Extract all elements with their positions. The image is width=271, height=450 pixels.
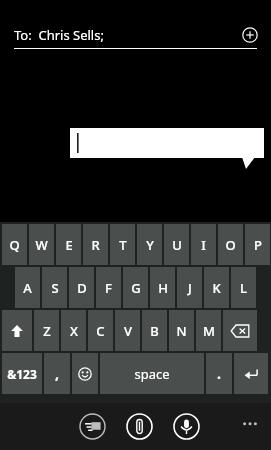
button[interactable]: T xyxy=(110,224,135,265)
button[interactable] xyxy=(223,310,257,351)
staticText: L xyxy=(240,279,247,297)
button[interactable]: D xyxy=(69,267,94,308)
button[interactable]: F xyxy=(96,267,121,308)
staticText: F xyxy=(105,279,112,297)
button[interactable]: Add recipient xyxy=(239,24,261,46)
staticText: Z xyxy=(43,322,51,340)
button[interactable]: Send xyxy=(76,410,109,443)
button[interactable]: , xyxy=(44,353,70,394)
staticText: P xyxy=(254,236,262,254)
staticText: B xyxy=(150,322,159,340)
button[interactable]: Y xyxy=(137,224,162,265)
button[interactable]: X xyxy=(61,310,86,351)
button[interactable]: Attach xyxy=(123,410,156,443)
button[interactable]: K xyxy=(204,267,229,308)
staticText: R xyxy=(91,236,100,254)
button[interactable]: Z xyxy=(34,310,59,351)
button[interactable]: C xyxy=(88,310,113,351)
staticText: To: Chris Sells; xyxy=(14,26,104,44)
button[interactable]: U xyxy=(164,224,189,265)
button[interactable]: M xyxy=(196,310,221,351)
button[interactable] xyxy=(72,353,98,394)
staticText: K xyxy=(212,279,221,297)
staticText: O xyxy=(225,236,236,254)
button[interactable]: P xyxy=(245,224,270,265)
button[interactable]: More options xyxy=(235,412,265,442)
staticText: C xyxy=(96,322,105,340)
button[interactable]: Voice input xyxy=(170,410,203,443)
button[interactable]: R xyxy=(83,224,108,265)
button[interactable]: A xyxy=(15,267,40,308)
button[interactable]: G xyxy=(123,267,148,308)
button[interactable]: H xyxy=(150,267,175,308)
staticText: G xyxy=(131,279,141,297)
staticText: space xyxy=(134,365,170,383)
button[interactable]: I xyxy=(191,224,216,265)
staticText: A xyxy=(23,279,32,297)
button[interactable] xyxy=(2,310,32,351)
staticText: T xyxy=(119,236,127,254)
staticText: D xyxy=(77,279,87,297)
button[interactable]: O xyxy=(218,224,243,265)
staticText: N xyxy=(176,322,187,340)
button[interactable]: space xyxy=(100,353,204,394)
button[interactable]: S xyxy=(42,267,67,308)
staticText: V xyxy=(124,322,132,340)
staticText: &123 xyxy=(7,366,37,382)
button[interactable]: V xyxy=(115,310,140,351)
button[interactable]: J xyxy=(177,267,202,308)
staticText: Y xyxy=(146,236,154,254)
staticText: M xyxy=(203,322,215,340)
staticText: J xyxy=(188,279,192,297)
button[interactable]: W xyxy=(29,224,54,265)
staticText: , xyxy=(55,364,59,383)
staticText: I xyxy=(201,236,206,254)
staticText: X xyxy=(70,322,78,340)
staticText: E xyxy=(65,236,73,254)
button[interactable]: B xyxy=(142,310,167,351)
button[interactable]: E xyxy=(56,224,81,265)
staticText: S xyxy=(51,279,59,297)
button[interactable]: L xyxy=(231,267,256,308)
button[interactable]: . xyxy=(206,353,232,394)
button[interactable] xyxy=(234,353,268,394)
staticText: U xyxy=(172,236,182,254)
staticText: H xyxy=(158,279,168,297)
button[interactable]: &123 xyxy=(2,353,42,394)
button[interactable]: N xyxy=(169,310,194,351)
staticText: W xyxy=(35,236,48,254)
staticText: Q xyxy=(9,236,20,254)
button[interactable]: Q xyxy=(2,224,27,265)
staticText: . xyxy=(217,364,221,383)
